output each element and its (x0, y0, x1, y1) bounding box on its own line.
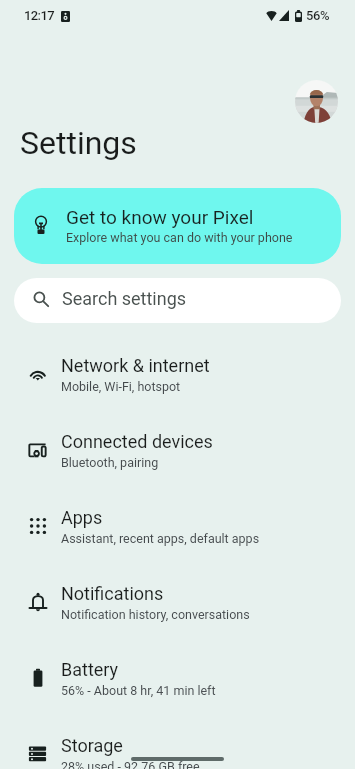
staticText: Assistant, recent apps, default apps (61, 531, 260, 546)
button[interactable]: Battery (0, 640, 355, 716)
staticText: Bluetooth, pairing (61, 455, 159, 470)
button[interactable]: Get to know your Pixel (14, 188, 341, 264)
staticText: Mobile, Wi-Fi, hotspot (61, 379, 181, 394)
staticText: Get to know your Pixel (66, 206, 254, 228)
button[interactable]: Account (295, 80, 338, 123)
staticText: Battery (61, 659, 119, 680)
button[interactable]: Apps (0, 488, 355, 564)
button[interactable]: Network & internet (0, 336, 355, 412)
button[interactable]: Connected devices (0, 412, 355, 488)
staticText: Explore what you can do with your phone (66, 230, 293, 245)
staticText: 12:17 (24, 8, 55, 23)
staticText: Search settings (62, 288, 187, 309)
staticText: Storage (61, 735, 123, 756)
staticText: Apps (61, 507, 103, 528)
staticText: Settings (20, 124, 137, 162)
staticText: Notification history, conversations (61, 607, 250, 622)
staticText: Notifications (61, 583, 164, 604)
staticText: 56% (306, 8, 330, 23)
staticText: 56% - About 8 hr, 41 min left (61, 683, 216, 698)
staticText: Network & internet (61, 355, 210, 376)
staticText: Connected devices (61, 431, 213, 452)
staticText: 28% used - 92.76 GB free (61, 759, 200, 769)
button[interactable]: Notifications (0, 564, 355, 640)
button[interactable]: Storage (0, 716, 355, 769)
button[interactable]: Search settings (14, 278, 341, 323)
